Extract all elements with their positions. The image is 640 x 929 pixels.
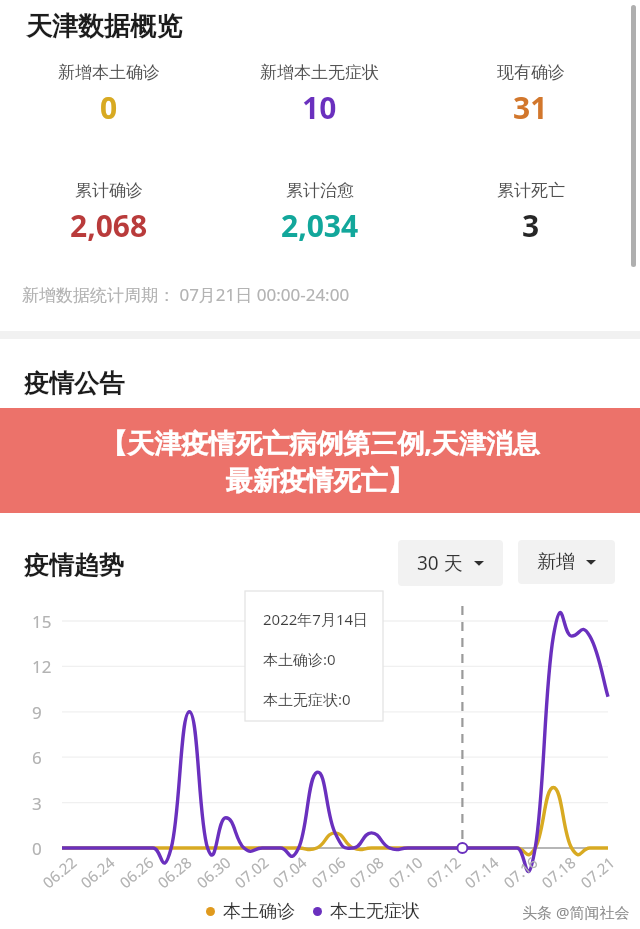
staticText: 2,068 [70,205,148,246]
staticText: 07.16 [499,852,542,892]
staticText: 06.30 [192,852,235,892]
button[interactable]: 新增本土确诊 [4,62,214,128]
staticText: 6 [32,746,42,769]
staticText: 现有确诊 [497,62,565,83]
button[interactable]: 累计死亡 [425,180,636,246]
staticText: 10 [302,87,337,128]
staticText: 06.22 [38,852,81,892]
staticText: 疫情趋势 [24,550,124,581]
staticText: 2022年7月14日 [263,609,369,629]
staticText: 头条 @简闻社会 [522,902,630,922]
staticText: 新增数据统计周期： 07月21日 00:00-24:00 [22,283,350,306]
staticText: 新增本土确诊 [58,62,160,83]
staticText: 3 [32,792,42,815]
staticText: 新增本土无症状 [260,62,379,83]
staticText: 07.04 [268,852,311,892]
staticText: 07.21 [576,852,619,892]
staticText: 本土无症状 [330,900,420,923]
staticText: 06.24 [76,852,119,892]
button[interactable]: 累计治愈 [214,180,425,246]
button[interactable]: 新增 [518,540,615,584]
staticText: 30 天 [417,550,463,576]
staticText: 本土确诊:0 [263,649,336,669]
staticText: 天津数据概览 [26,10,182,43]
staticText: 【天津疫情死亡病例第三例,天津消息 最新疫情死亡】 [100,424,540,498]
button[interactable]: 累计确诊 [4,180,214,246]
staticText: 本土确诊 [223,900,295,923]
button[interactable]: 现有确诊 [425,62,636,128]
staticText: 累计确诊 [75,180,143,201]
staticText: 9 [32,701,42,724]
staticText: 新增 [537,550,575,574]
staticText: 3 [522,205,540,246]
button[interactable]: 天津昨日新增10例本土无症状 [26,440,326,469]
staticText: 07.06 [307,852,350,892]
staticText: 2,034 [281,205,359,246]
staticText: 12 [32,655,52,678]
staticText: 07.02 [230,852,273,892]
staticText: 天津昨日新增10例本土无症状 [49,440,326,469]
staticText: 15 [32,610,52,633]
staticText: 0 [100,87,118,128]
staticText: 07.14 [460,852,503,892]
staticText: 疫情公告 [24,368,124,399]
staticText: 累计死亡 [497,180,565,201]
staticText: 06.28 [153,852,196,892]
button[interactable]: 新增本土无症状 [214,62,425,128]
staticText: 07.12 [422,852,465,892]
staticText: 31 [513,87,548,128]
staticText: 07.10 [384,852,427,892]
staticText: 本土无症状:0 [263,689,351,709]
staticText: 06.26 [115,852,158,892]
staticText: 07.18 [537,852,580,892]
staticText: 累计治愈 [286,180,354,201]
staticText: 0 [32,837,42,860]
button[interactable]: 30 天 [398,540,503,586]
staticText: 07.08 [345,852,388,892]
